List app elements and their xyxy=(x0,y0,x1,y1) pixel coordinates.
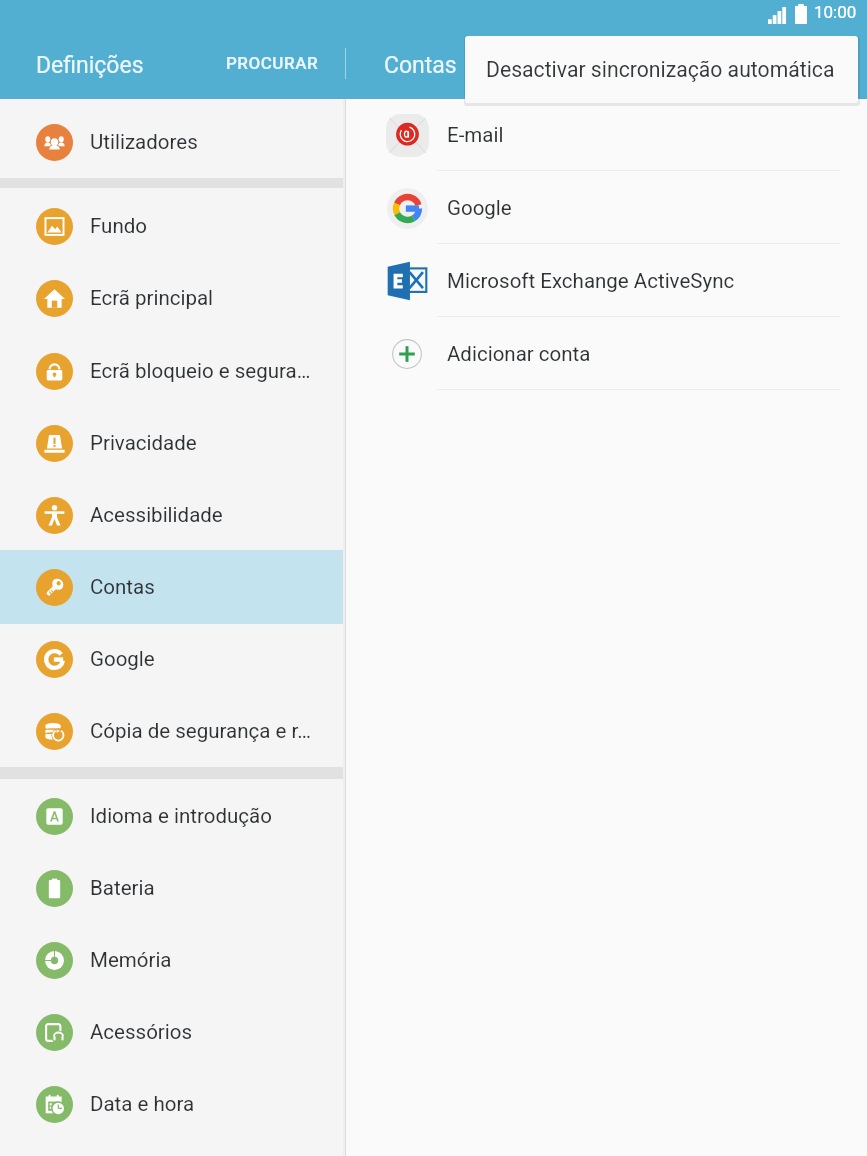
staticText: Contas xyxy=(90,575,322,599)
button[interactable]: Acessórios xyxy=(0,996,345,1068)
button[interactable]: Definições xyxy=(20,28,160,99)
button[interactable]: Memória xyxy=(0,924,345,996)
button[interactable]: Adicionar conta xyxy=(346,317,867,390)
staticText: Adicionar conta xyxy=(447,342,591,366)
button[interactable]: Idioma e introdução xyxy=(0,780,345,852)
staticText: Desactivar sincronização automática xyxy=(486,57,835,82)
staticText: Google xyxy=(447,196,512,220)
staticText: 10:00 xyxy=(814,2,857,22)
staticText: Definições xyxy=(36,52,144,79)
staticText: Fundo xyxy=(90,214,322,238)
staticText: Memória xyxy=(90,948,322,972)
button[interactable]: Desactivar sincronização automática xyxy=(465,36,858,103)
staticText: PROCURAR xyxy=(226,53,319,73)
button[interactable]: Ecrã principal xyxy=(0,262,345,334)
button[interactable]: Data e hora xyxy=(0,1068,345,1140)
button[interactable]: Google xyxy=(0,623,345,695)
staticText: Data e hora xyxy=(90,1092,322,1116)
button[interactable]: Microsoft Exchange ActiveSync xyxy=(346,244,867,317)
staticText: Ecrã bloqueio e segura… xyxy=(90,359,322,383)
staticText: Google xyxy=(90,647,322,671)
staticText: Ecrã principal xyxy=(90,286,322,310)
button[interactable]: Ecrã bloqueio e segura… xyxy=(0,335,345,407)
button[interactable]: Fundo xyxy=(0,190,345,262)
staticText: Microsoft Exchange ActiveSync xyxy=(447,269,735,293)
button[interactable]: Acessibilidade xyxy=(0,479,345,551)
staticText: Privacidade xyxy=(90,431,322,455)
button[interactable]: Utilizadores xyxy=(0,106,345,178)
button[interactable]: Cópia de segurança e r… xyxy=(0,695,345,767)
staticText: Idioma e introdução xyxy=(90,804,322,828)
staticText: Cópia de segurança e r… xyxy=(90,719,322,743)
staticText: Bateria xyxy=(90,876,322,900)
staticText: E-mail xyxy=(447,123,504,147)
staticText: Contas xyxy=(384,52,457,79)
button[interactable]: Contas xyxy=(0,551,345,623)
staticText: Acessibilidade xyxy=(90,503,322,527)
staticText: Utilizadores xyxy=(90,130,322,154)
button[interactable]: Bateria xyxy=(0,852,345,924)
button[interactable]: E-mail xyxy=(346,98,867,171)
button[interactable]: PROCURAR xyxy=(206,28,339,99)
button[interactable]: Privacidade xyxy=(0,407,345,479)
button[interactable]: Google xyxy=(346,171,867,244)
staticText: Acessórios xyxy=(90,1020,322,1044)
button[interactable]: Contas xyxy=(368,28,473,99)
